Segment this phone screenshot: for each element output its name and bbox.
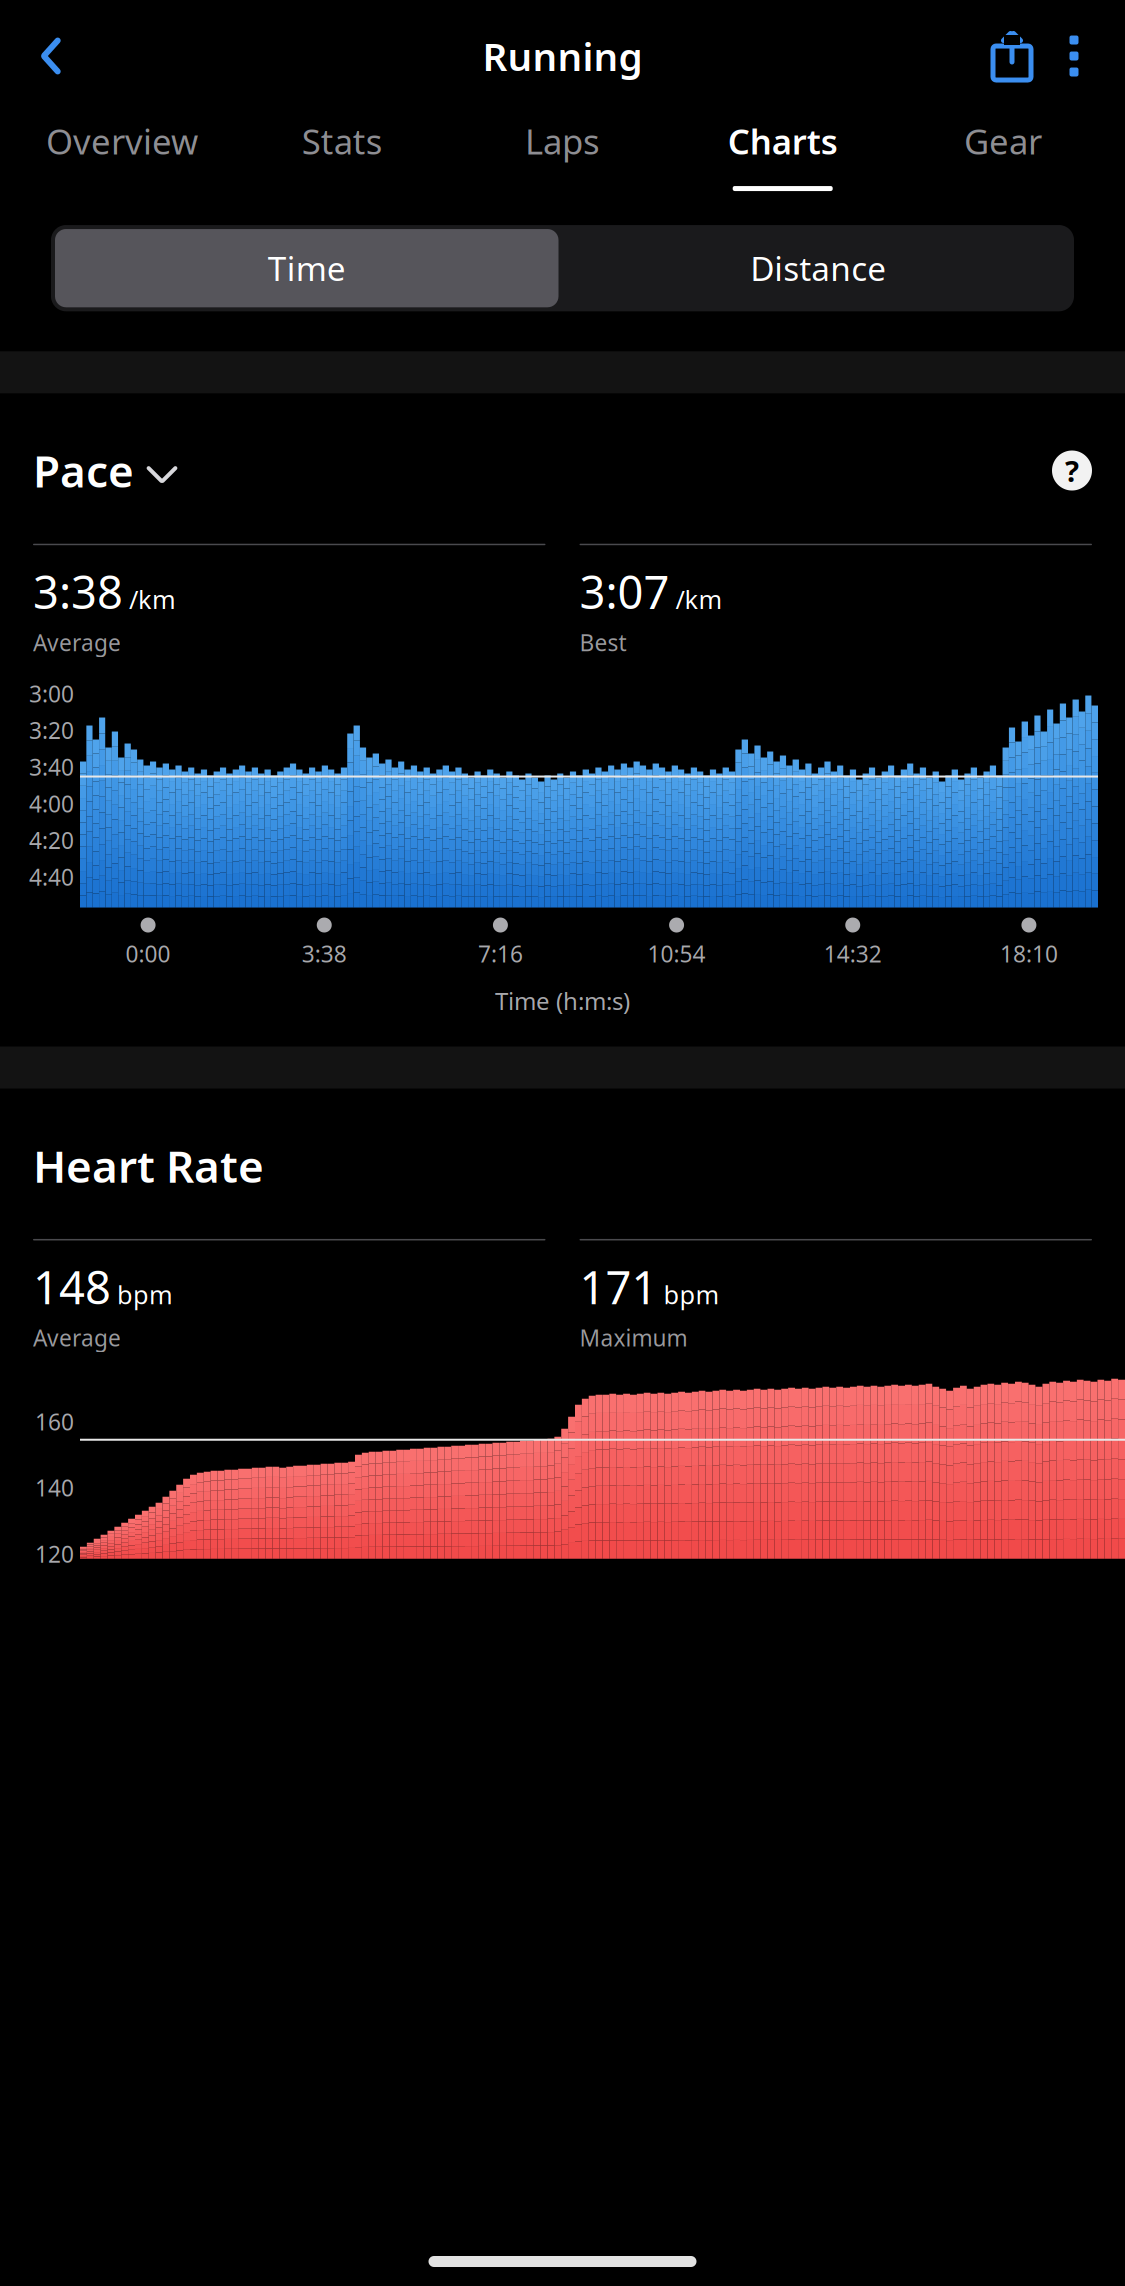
staticText: 4:20 (29, 825, 74, 855)
staticText: Average (33, 1323, 121, 1353)
staticText: Pace (33, 441, 134, 500)
staticText: bpm (663, 1277, 719, 1311)
staticText: Heart Rate (33, 1136, 264, 1195)
staticText: Running (482, 30, 642, 82)
staticText: 3:07 (579, 561, 669, 621)
staticText: /km (129, 582, 176, 616)
staticText: ? (1065, 451, 1079, 490)
button[interactable]: Share (981, 25, 1043, 87)
staticText: 140 (35, 1473, 74, 1503)
button[interactable]: More options (1043, 25, 1105, 87)
staticText: Overview (46, 118, 198, 164)
button[interactable]: Help (1052, 450, 1092, 490)
staticText: 3:20 (29, 715, 74, 745)
staticText: Distance (750, 246, 886, 290)
button[interactable]: Stats (232, 112, 452, 197)
staticText: Laps (525, 118, 600, 164)
staticText: 7:16 (478, 938, 523, 969)
staticText: 10:54 (648, 938, 706, 969)
staticText: 148 (33, 1256, 111, 1317)
staticText: 14:32 (824, 938, 882, 969)
staticText: 4:00 (29, 788, 74, 819)
button[interactable]: Back (20, 25, 82, 87)
staticText: /km (675, 582, 722, 616)
staticText: Time (268, 246, 346, 290)
staticText: 4:40 (29, 862, 74, 892)
staticText: 3:00 (29, 678, 74, 709)
staticText: Gear (964, 118, 1042, 164)
staticText: 120 (35, 1539, 74, 1569)
staticText: 3:38 (33, 561, 123, 621)
staticText: Best (579, 627, 626, 657)
button[interactable]: Time (51, 225, 562, 311)
staticText: 171 (579, 1256, 657, 1317)
staticText: Average (33, 627, 121, 657)
staticText: 0:00 (126, 938, 171, 969)
staticText: 3:40 (29, 752, 74, 782)
staticText: bpm (117, 1277, 173, 1311)
button[interactable]: Laps (452, 112, 673, 197)
staticText: 18:10 (1000, 938, 1058, 969)
staticText: 3:38 (302, 938, 347, 969)
button[interactable]: Pace (33, 441, 177, 500)
button[interactable]: Overview (12, 112, 232, 197)
staticText: Stats (302, 118, 383, 164)
button[interactable]: Charts (673, 112, 893, 197)
staticText: 160 (35, 1407, 74, 1437)
staticText: Charts (728, 118, 838, 164)
staticText: Time (h:m:s) (495, 985, 630, 1016)
button[interactable]: Gear (893, 112, 1113, 197)
button[interactable]: Distance (562, 225, 1074, 311)
staticText: Maximum (579, 1323, 687, 1353)
